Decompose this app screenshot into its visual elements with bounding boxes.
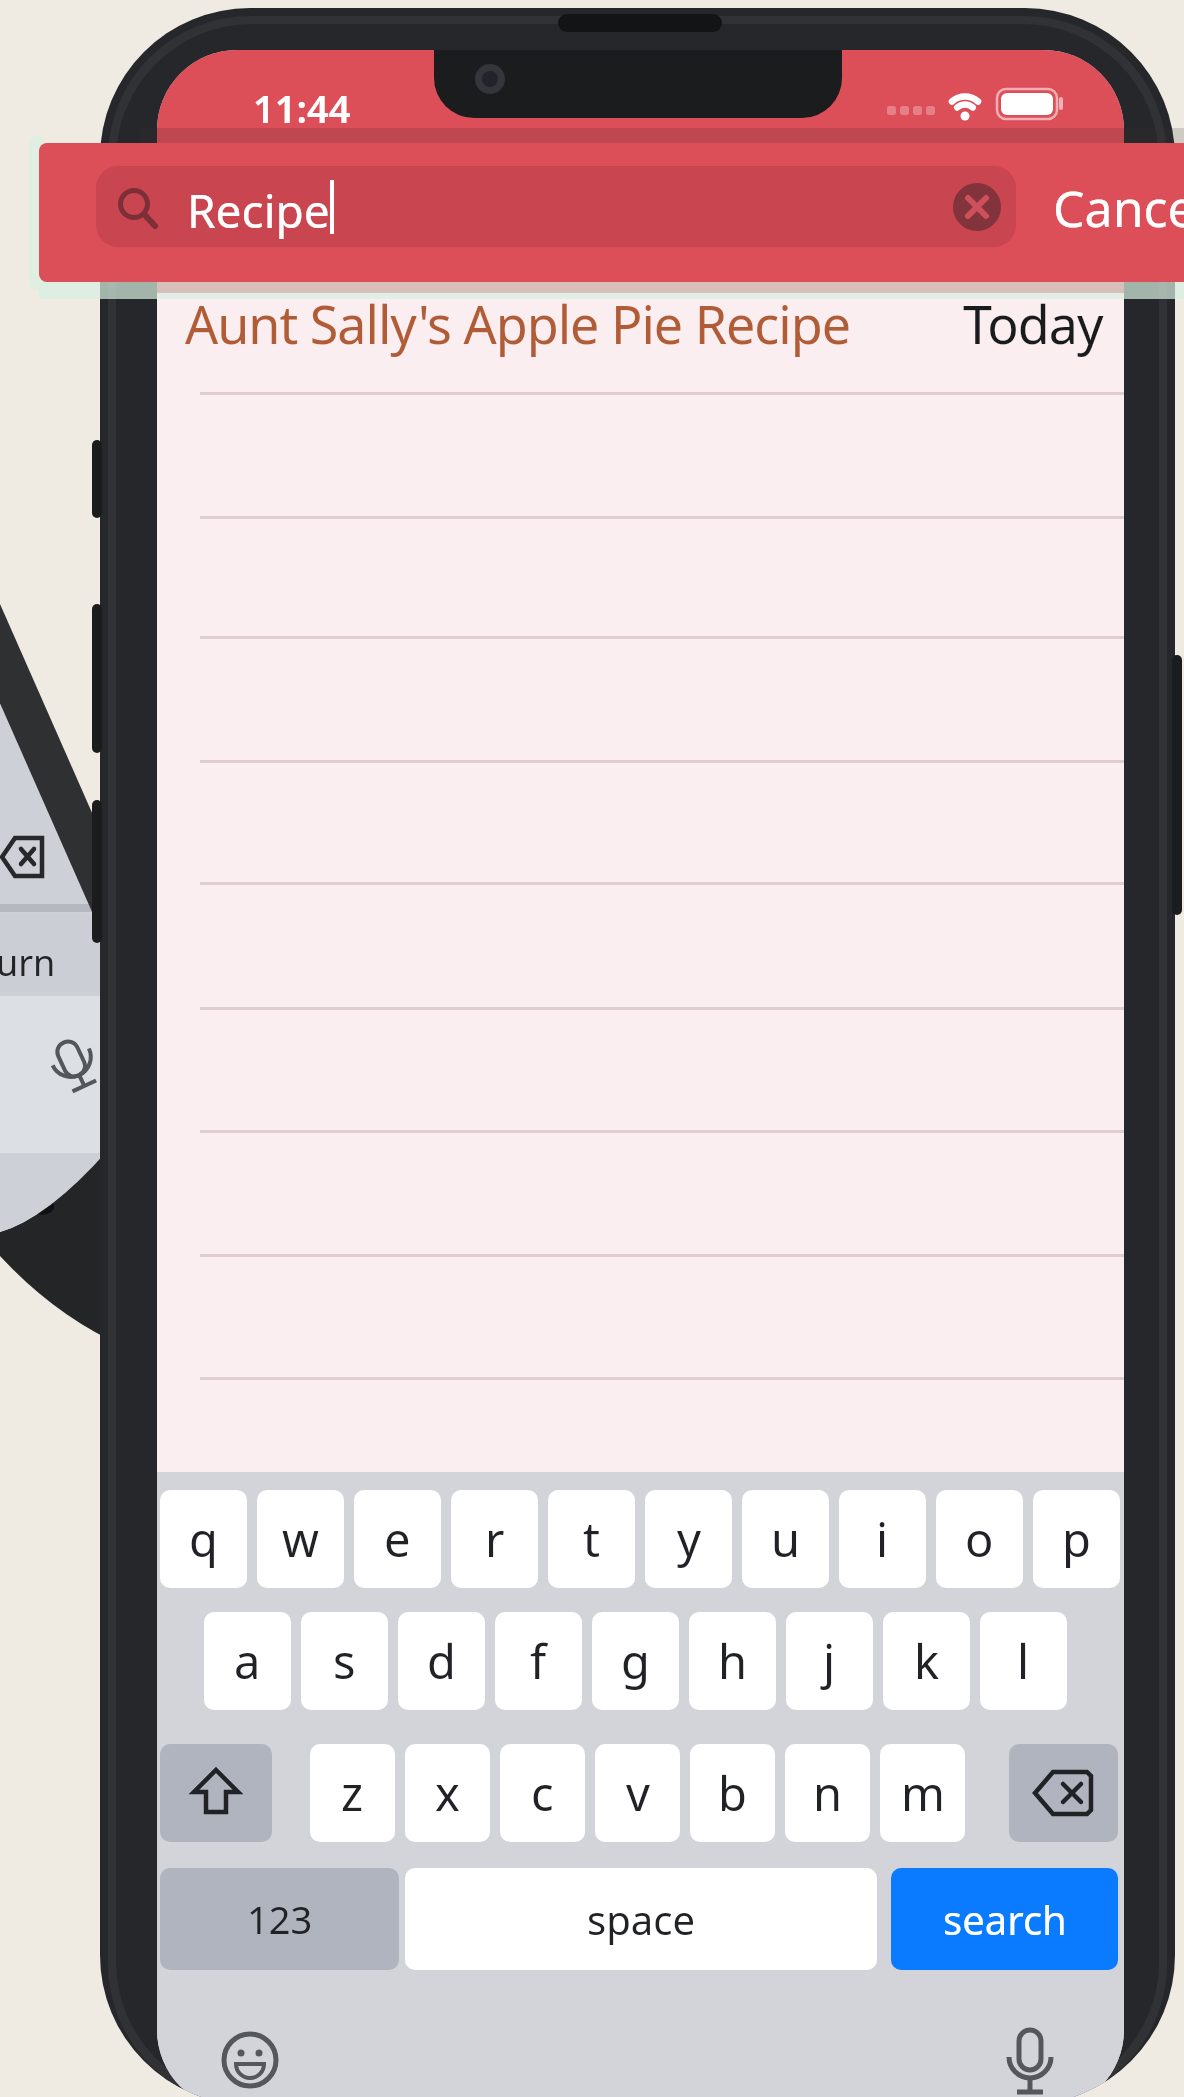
staticText: t bbox=[583, 1507, 600, 1571]
button[interactable]: Cancel bbox=[1053, 174, 1184, 242]
button[interactable]: a bbox=[204, 1612, 291, 1710]
button[interactable]: b bbox=[690, 1744, 775, 1842]
staticText: f bbox=[530, 1629, 547, 1693]
staticText: 11:44 bbox=[253, 82, 351, 134]
staticText: i bbox=[876, 1507, 889, 1571]
button[interactable]: d bbox=[398, 1612, 485, 1710]
staticText: k bbox=[914, 1629, 940, 1693]
staticText: e bbox=[384, 1507, 411, 1571]
staticText: y bbox=[677, 1507, 701, 1571]
staticText: c bbox=[531, 1761, 554, 1825]
button[interactable]: x bbox=[405, 1744, 490, 1842]
button[interactable]: space bbox=[405, 1868, 877, 1970]
staticText: u bbox=[771, 1507, 801, 1571]
button[interactable]: k bbox=[883, 1612, 970, 1710]
button[interactable]: e bbox=[354, 1490, 441, 1588]
button[interactable]: h bbox=[689, 1612, 776, 1710]
staticText: o bbox=[965, 1507, 994, 1571]
staticText: s bbox=[333, 1629, 356, 1693]
staticText: b bbox=[718, 1761, 747, 1825]
staticText: j bbox=[823, 1629, 836, 1693]
staticText: x bbox=[435, 1761, 460, 1825]
button[interactable]: Recipe bbox=[96, 166, 1016, 247]
staticText: r bbox=[485, 1507, 505, 1571]
button[interactable]: t bbox=[548, 1490, 635, 1588]
button[interactable]: p bbox=[1033, 1490, 1120, 1588]
button[interactable]: l bbox=[980, 1612, 1067, 1710]
button[interactable]: o bbox=[936, 1490, 1023, 1588]
staticText: n bbox=[813, 1761, 843, 1825]
staticText: Today bbox=[963, 288, 1103, 359]
button[interactable]: v bbox=[595, 1744, 680, 1842]
button[interactable]: s bbox=[301, 1612, 388, 1710]
button[interactable]: q bbox=[160, 1490, 247, 1588]
button[interactable]: n bbox=[785, 1744, 870, 1842]
button[interactable]: g bbox=[592, 1612, 679, 1710]
staticText: g bbox=[621, 1629, 650, 1693]
button[interactable]: z bbox=[310, 1744, 395, 1842]
staticText: q bbox=[189, 1507, 218, 1571]
button[interactable]: j bbox=[786, 1612, 873, 1710]
button[interactable]: 123 bbox=[160, 1868, 399, 1970]
staticText: space bbox=[587, 1892, 695, 1946]
button[interactable]: c bbox=[500, 1744, 585, 1842]
button[interactable]: w bbox=[257, 1490, 344, 1588]
button[interactable] bbox=[160, 1744, 272, 1842]
staticText: 123 bbox=[247, 1893, 313, 1945]
staticText: w bbox=[282, 1507, 319, 1571]
button[interactable]: r bbox=[451, 1490, 538, 1588]
staticText: m bbox=[901, 1761, 945, 1825]
staticText: urn bbox=[0, 938, 56, 987]
staticText: l bbox=[1017, 1629, 1030, 1693]
staticText: a bbox=[234, 1629, 261, 1693]
button[interactable]: i bbox=[839, 1490, 926, 1588]
button[interactable]: y bbox=[645, 1490, 732, 1588]
staticText: h bbox=[718, 1629, 748, 1693]
button[interactable] bbox=[953, 183, 1001, 231]
button[interactable]: search bbox=[891, 1868, 1118, 1970]
staticText: d bbox=[427, 1629, 456, 1693]
staticText: z bbox=[341, 1761, 364, 1825]
button[interactable]: u bbox=[742, 1490, 829, 1588]
staticText: Aunt Sally's Apple Pie Recipe bbox=[185, 288, 851, 359]
staticText: search bbox=[943, 1892, 1067, 1946]
staticText: Recipe bbox=[187, 179, 330, 242]
button[interactable]: m bbox=[880, 1744, 965, 1842]
staticText: v bbox=[626, 1761, 650, 1825]
button[interactable]: f bbox=[495, 1612, 582, 1710]
button[interactable] bbox=[1009, 1744, 1118, 1842]
staticText: p bbox=[1062, 1507, 1091, 1571]
